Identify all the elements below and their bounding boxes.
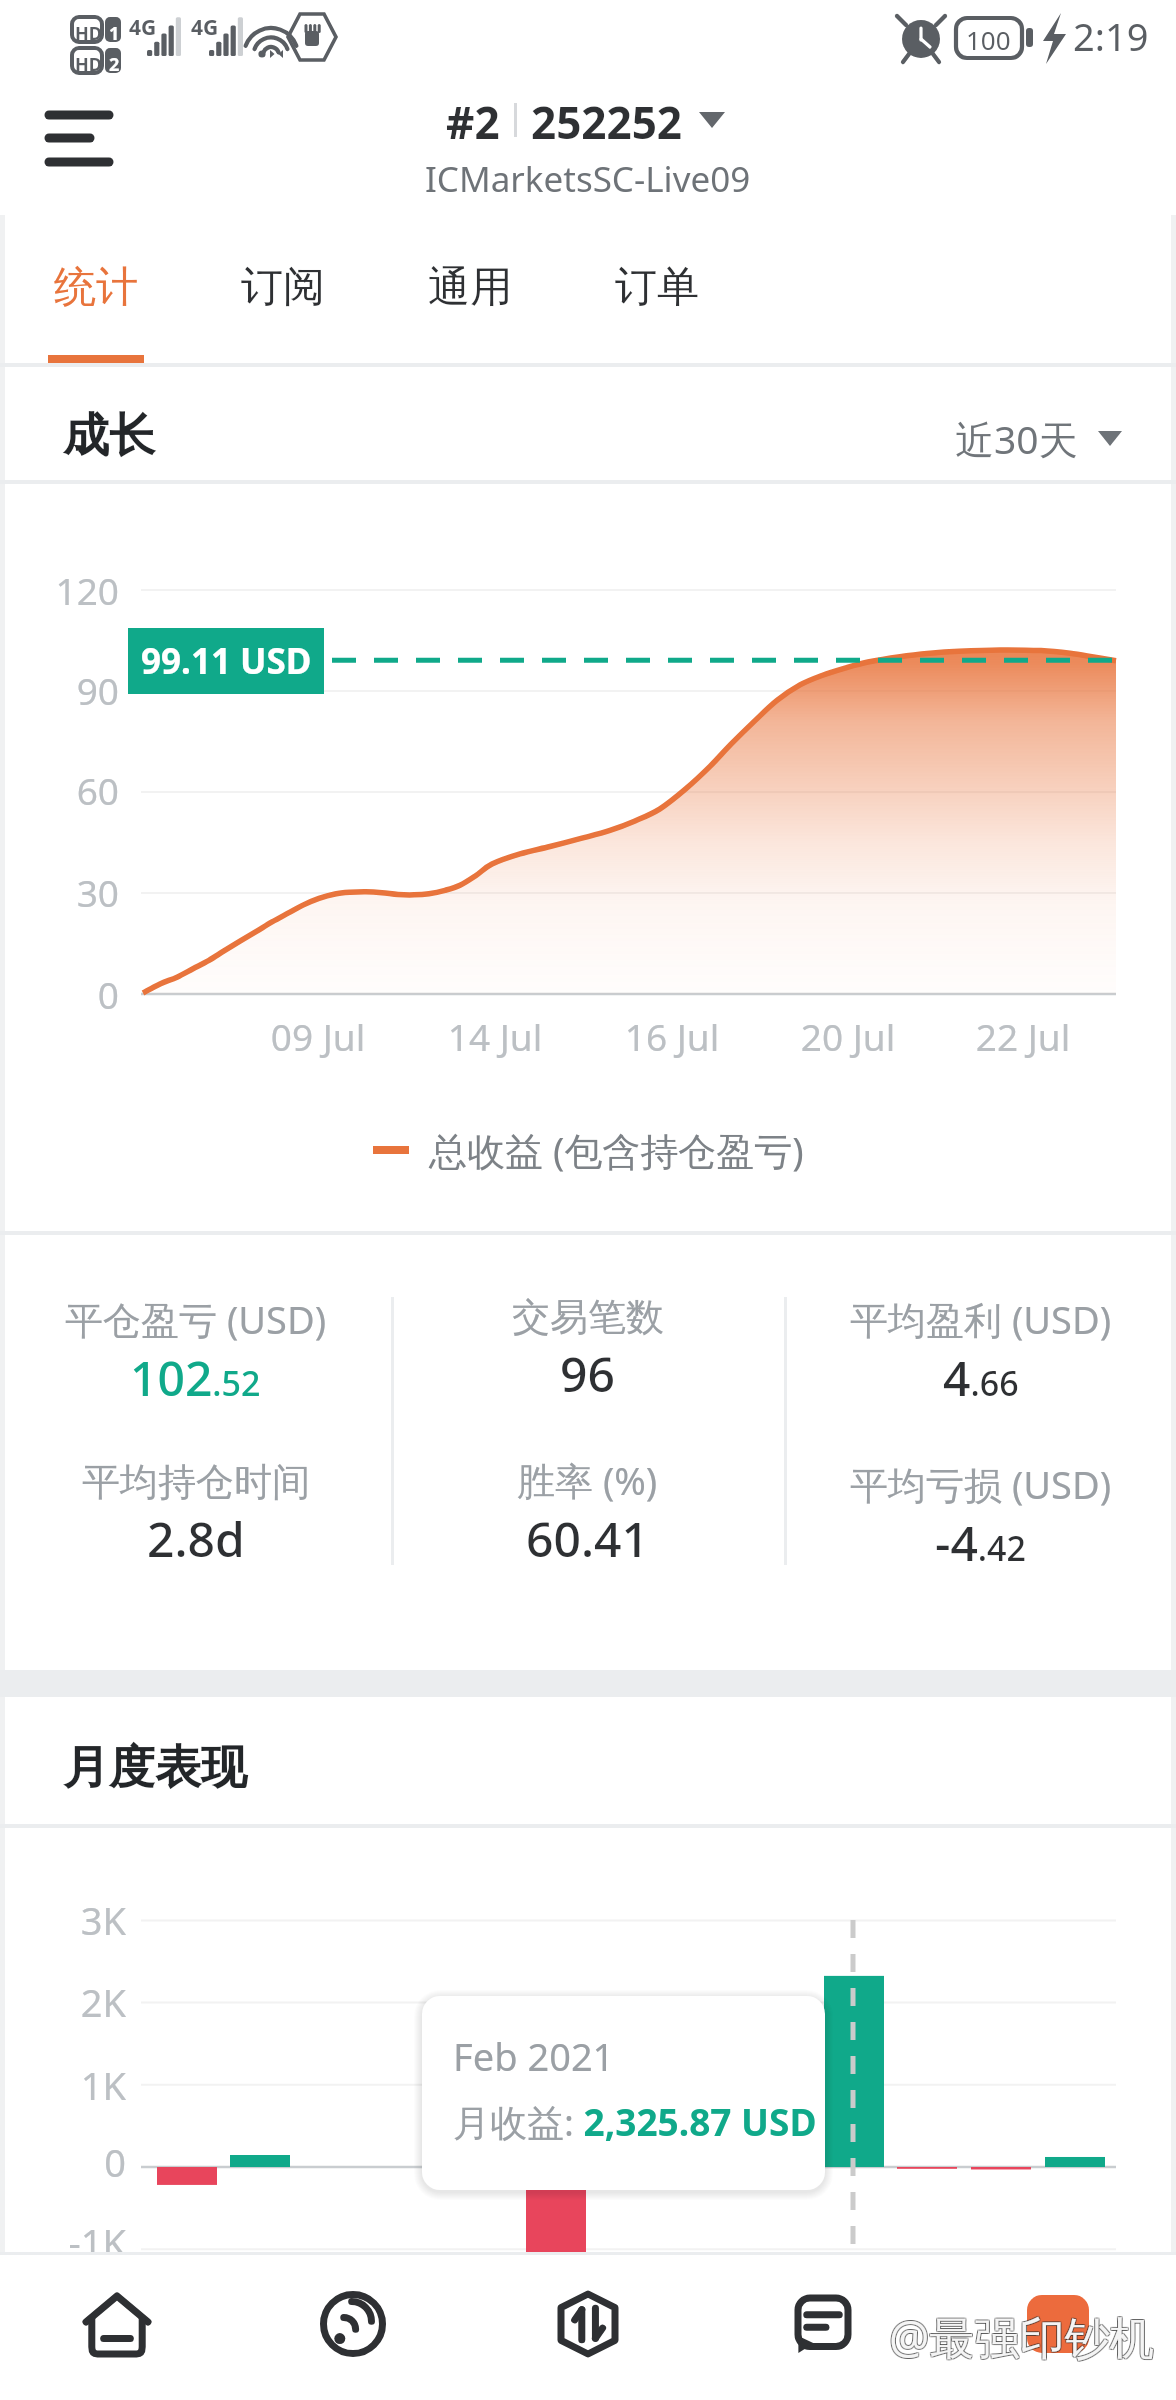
- staticText: 99.11 USD: [141, 637, 312, 685]
- staticText: HD: [75, 21, 102, 46]
- staticText: 60: [0, 765, 119, 815]
- staticText: 2: [109, 52, 120, 77]
- button[interactable]: 统计: [30, 215, 162, 367]
- button[interactable]: 订阅: [217, 215, 349, 367]
- staticText: 3K: [0, 1894, 126, 1946]
- staticText: 交易笔数: [512, 1293, 664, 1341]
- staticText: 100: [966, 22, 1011, 57]
- staticText: 4G: [191, 13, 219, 42]
- staticText: 订阅: [241, 261, 325, 314]
- button[interactable]: Menu: [30, 88, 130, 168]
- staticText: 成长: [63, 407, 155, 465]
- staticText: 平均亏损 (USD): [850, 1458, 1112, 1510]
- staticText: 102.52: [130, 1345, 261, 1410]
- button[interactable]: 通用: [404, 215, 536, 367]
- staticText: @最强印钞机: [888, 2305, 1154, 2366]
- staticText: 2:19: [1073, 10, 1149, 62]
- staticText: @最强印钞机: [888, 2306, 1154, 2367]
- staticText: -4.42: [935, 1510, 1027, 1575]
- staticText: 1K: [0, 2059, 126, 2111]
- staticText: 20 Jul: [758, 1011, 938, 1061]
- staticText: 订单: [615, 261, 699, 314]
- staticText: 通用: [428, 261, 512, 314]
- staticText: 90: [0, 665, 119, 715]
- staticText: 60.41: [526, 1506, 649, 1571]
- button[interactable]: Profile: [984, 2252, 1132, 2400]
- staticText: #2: [446, 92, 500, 148]
- staticText: 0: [0, 2136, 126, 2188]
- staticText: -1K: [0, 2216, 126, 2268]
- staticText: @最强印钞机: [888, 2307, 1154, 2368]
- staticText: 平仓盈亏 (USD): [65, 1293, 327, 1345]
- staticText: @最强印钞机: [890, 2305, 1156, 2366]
- staticText: 总收益 (包含持仓盈亏): [429, 1124, 804, 1176]
- staticText: 月收益: 2,325.87 USD: [453, 2096, 817, 2147]
- staticText: 平均持仓时间: [82, 1458, 310, 1506]
- staticText: 4G: [129, 13, 157, 42]
- staticText: 2.8d: [147, 1506, 245, 1571]
- staticText: @最强印钞机: [889, 2306, 1155, 2367]
- staticText: 近30天: [955, 412, 1078, 464]
- staticText: 2K: [0, 1976, 126, 2028]
- staticText: 30: [0, 867, 119, 917]
- staticText: HD: [75, 52, 102, 77]
- staticText: 22 Jul: [933, 1011, 1113, 1061]
- button[interactable]: 近30天: [955, 412, 1122, 464]
- staticText: 96: [560, 1341, 615, 1406]
- button[interactable]: 订单: [591, 215, 723, 367]
- button[interactable]: Trade: [514, 2252, 662, 2400]
- staticText: @最强印钞机: [890, 2306, 1156, 2367]
- button[interactable]: Home: [43, 2252, 191, 2400]
- staticText: 09 Jul: [228, 1011, 408, 1061]
- staticText: 1: [109, 21, 120, 46]
- staticText: 252252: [531, 92, 683, 148]
- button[interactable]: Messages: [749, 2252, 897, 2400]
- staticText: 平均盈利 (USD): [850, 1293, 1112, 1345]
- staticText: ICMarketsSC-Live09: [425, 155, 751, 203]
- staticText: 120: [0, 565, 119, 615]
- staticText: 胜率 (%): [517, 1454, 658, 1506]
- staticText: 4.66: [943, 1345, 1019, 1410]
- staticText: 统计: [54, 261, 138, 314]
- button[interactable]: #2: [420, 92, 750, 148]
- staticText: 16 Jul: [582, 1011, 762, 1061]
- staticText: 月度表现: [63, 1739, 247, 1797]
- staticText: 0: [0, 969, 119, 1019]
- staticText: 14 Jul: [405, 1011, 585, 1061]
- staticText: @最强印钞机: [889, 2307, 1155, 2368]
- button[interactable]: Quotes: [279, 2252, 427, 2400]
- staticText: Feb 2021: [453, 2030, 615, 2082]
- staticText: @最强印钞机: [889, 2305, 1155, 2366]
- staticText: @最强印钞机: [890, 2307, 1156, 2368]
